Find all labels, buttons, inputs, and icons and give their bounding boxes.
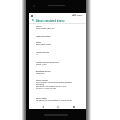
button[interactable]: Model xyxy=(29,41,86,51)
staticText: 5.4.61-android11-2-00064-g4a79b1d4d0d9-a… xyxy=(36,82,73,90)
button[interactable]: Recents xyxy=(71,104,76,109)
staticText: Model xyxy=(36,41,42,43)
staticText: Kernel version xyxy=(36,79,48,81)
button[interactable]: Kernel version xyxy=(29,79,86,97)
staticText: ▴▮▮ 100% xyxy=(72,14,83,17)
button[interactable]: Back xyxy=(29,17,86,23)
button[interactable]: Home xyxy=(55,104,60,109)
staticText: January 1, 2021 xyxy=(36,64,47,66)
button[interactable]: Android version xyxy=(29,51,86,61)
button[interactable]: Android security patch level xyxy=(29,61,86,71)
button[interactable]: Baseband version xyxy=(29,70,86,80)
staticText: Legal information xyxy=(36,35,51,37)
staticText: Status xyxy=(36,25,42,27)
staticText: 11 xyxy=(36,54,38,56)
button[interactable]: Legal information xyxy=(29,35,86,41)
staticText: Phone number, signal, etc. xyxy=(36,28,55,30)
staticText: Device model number xyxy=(36,44,52,46)
staticText: g8150-00091 xyxy=(36,73,45,75)
button[interactable]: Back xyxy=(40,104,45,109)
staticText: Android version xyxy=(36,51,49,53)
other: Back xyxy=(31,18,35,22)
button[interactable]: Build number xyxy=(29,97,86,105)
staticText: sdk_gphone_x86_arm-userdebug 11 RSR1.201… xyxy=(36,100,73,102)
button[interactable]: Status xyxy=(29,25,86,35)
staticText: Build number xyxy=(36,97,48,99)
staticText: Baseband version xyxy=(36,70,51,72)
staticText: About emulated device xyxy=(36,19,65,22)
staticText: Android security patch level xyxy=(36,61,59,63)
